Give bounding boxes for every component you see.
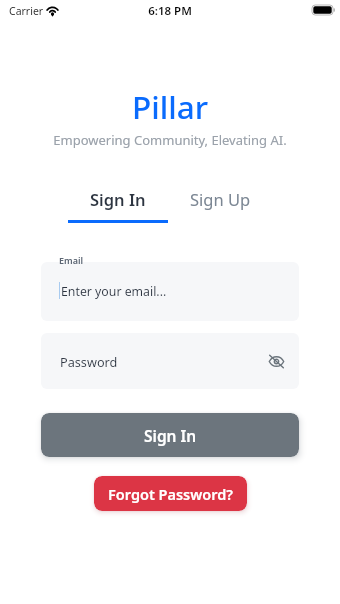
staticText: Enter your email...: [61, 283, 167, 300]
button[interactable]: Show password: [269, 354, 284, 369]
button[interactable]: Forgot Password?: [94, 476, 247, 511]
staticText: Forgot Password?: [108, 484, 234, 504]
staticText: 6:18 PM: [0, 3, 340, 19]
staticText: Email: [59, 254, 84, 266]
staticText: Sign In: [90, 188, 146, 210]
button[interactable]: Sign In: [41, 413, 299, 457]
staticText: Password: [60, 353, 118, 370]
staticText: Pillar: [0, 85, 340, 128]
staticText: Sign Up: [190, 188, 251, 210]
staticText: Sign In: [144, 425, 197, 446]
button[interactable]: Sign Up: [172, 188, 268, 223]
button[interactable]: [41, 333, 299, 389]
staticText: Carrier: [9, 4, 44, 18]
staticText: Empowering Community, Elevating AI.: [0, 131, 340, 149]
button[interactable]: Sign In: [68, 188, 168, 223]
button[interactable]: [41, 262, 299, 321]
